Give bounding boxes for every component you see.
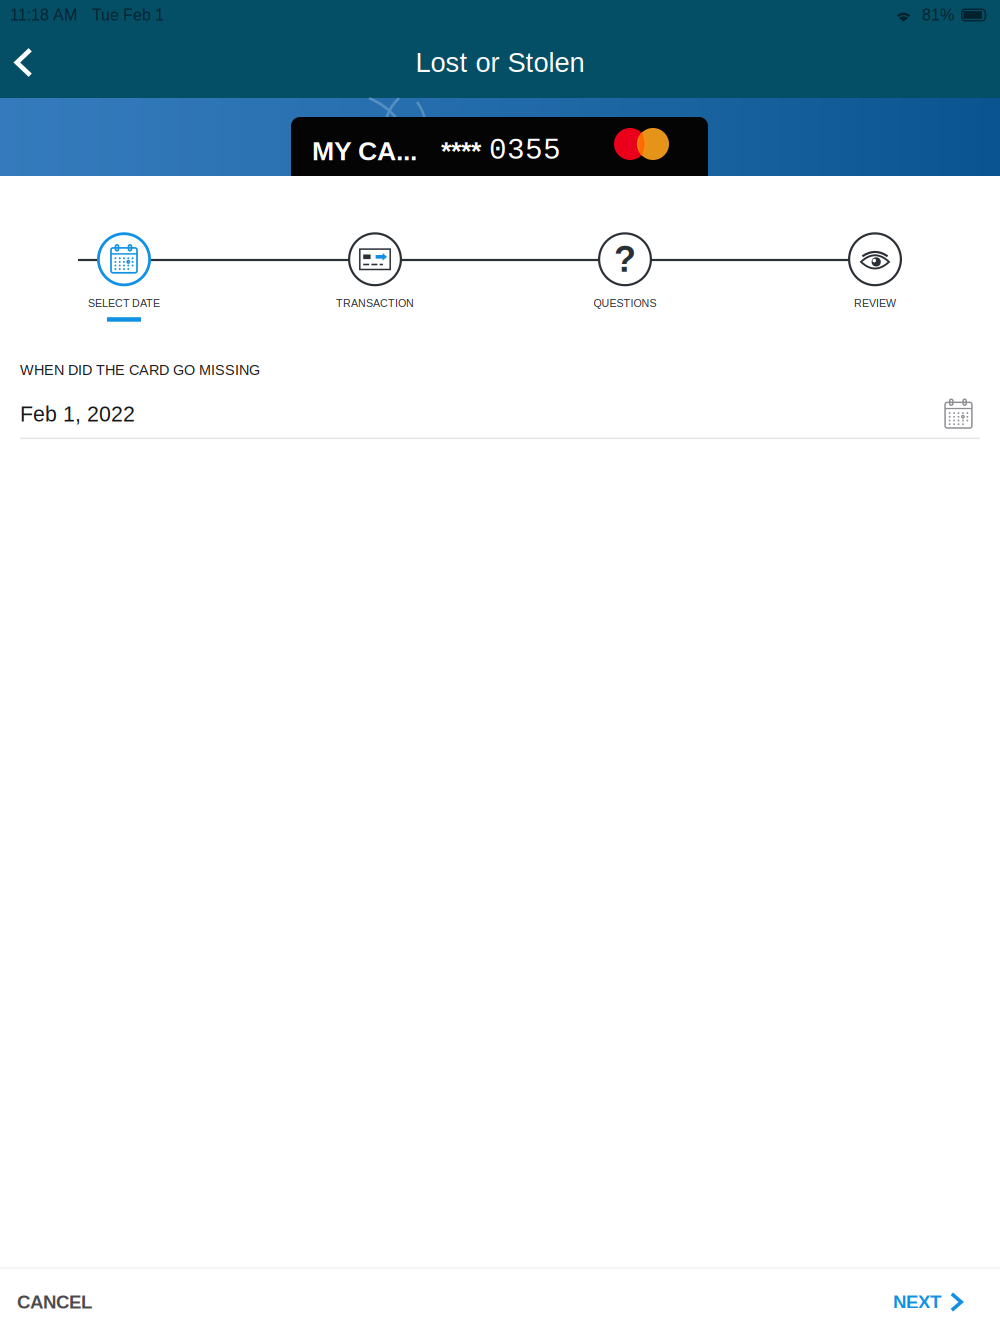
button[interactable]: ? xyxy=(540,232,710,322)
staticText: Tue Feb 1 xyxy=(92,6,164,24)
staticText: TRANSACTION xyxy=(336,297,414,309)
staticText: SELECT DATE xyxy=(88,297,160,309)
button[interactable]: SELECT DATE xyxy=(39,232,209,322)
staticText: 81% xyxy=(922,6,954,24)
staticText: ? xyxy=(614,239,636,279)
staticText: 11:18 AM xyxy=(10,6,77,24)
staticText: NEXT xyxy=(893,1292,941,1312)
staticText: QUESTIONS xyxy=(593,297,656,309)
staticText: WHEN DID THE CARD GO MISSING xyxy=(20,362,260,378)
button[interactable]: Feb 1, 2022 xyxy=(20,388,980,440)
staticText: 0355 xyxy=(489,134,561,168)
staticText: Lost or Stolen xyxy=(415,47,584,78)
staticText: Feb 1, 2022 xyxy=(20,402,135,426)
button[interactable]: Back xyxy=(0,33,47,91)
button[interactable]: TRANSACTION xyxy=(290,232,460,322)
staticText: MY CA... xyxy=(312,136,417,166)
staticText: REVIEW xyxy=(854,297,896,309)
button[interactable]: CANCEL xyxy=(0,1270,116,1334)
staticText: **** xyxy=(441,136,481,166)
staticText: CANCEL xyxy=(17,1292,92,1312)
button[interactable]: REVIEW xyxy=(790,232,960,322)
button[interactable]: NEXT xyxy=(869,1270,1000,1334)
